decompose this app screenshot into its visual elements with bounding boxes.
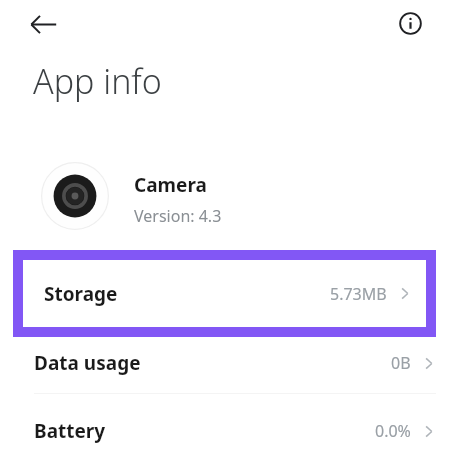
- staticText: 0.0%: [375, 420, 411, 442]
- staticText: Battery: [34, 418, 106, 444]
- staticText: App info: [33, 58, 162, 104]
- staticText: Camera: [134, 172, 207, 198]
- button[interactable]: Info: [388, 1, 432, 45]
- staticText: 5.73MB: [330, 283, 387, 305]
- staticText: Version: 4.3: [134, 205, 222, 227]
- button[interactable]: Data usage: [0, 340, 461, 386]
- staticText: Storage: [44, 281, 118, 307]
- button[interactable]: Battery: [0, 408, 461, 454]
- button[interactable]: Storage: [23, 260, 426, 327]
- staticText: Data usage: [34, 350, 141, 376]
- button[interactable]: Back: [21, 2, 65, 46]
- staticText: 0B: [391, 352, 411, 374]
